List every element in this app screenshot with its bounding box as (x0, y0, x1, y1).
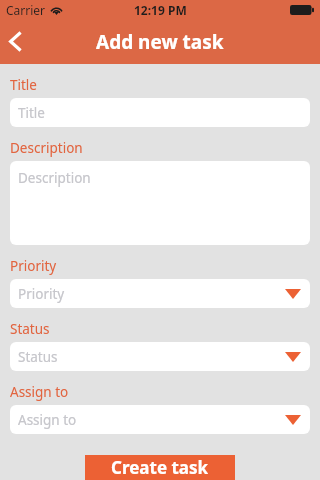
staticText: Status (18, 348, 58, 366)
staticText: Priority (10, 257, 57, 275)
staticText: Description (10, 139, 83, 157)
staticText: Description (18, 169, 91, 187)
staticText: Status (10, 320, 50, 338)
button[interactable]: Assign to (10, 405, 310, 434)
staticText: 12:19 PM (134, 2, 187, 18)
button[interactable]: Priority (10, 279, 310, 308)
staticText: Carrier (6, 2, 46, 18)
staticText: Priority (18, 285, 65, 303)
button[interactable]: Description (10, 161, 310, 245)
button[interactable]: Create task (85, 455, 235, 480)
button[interactable]: Status (10, 342, 310, 371)
button[interactable]: Back (0, 20, 40, 64)
staticText: Create task (111, 456, 209, 479)
staticText: Assign to (18, 411, 77, 429)
staticText: Assign to (10, 383, 69, 401)
staticText: Title (10, 76, 37, 94)
staticText: Add new task (96, 29, 224, 55)
button[interactable]: Title (10, 98, 310, 127)
staticText: Title (18, 104, 45, 122)
